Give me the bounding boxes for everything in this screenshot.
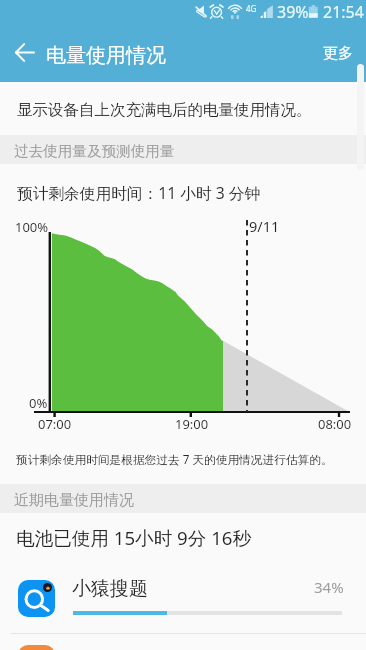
staticText: 19:00 bbox=[175, 415, 209, 433]
staticText: 小猿搜题 bbox=[72, 577, 148, 601]
staticText: 过去使用量及预测使用量 bbox=[14, 142, 175, 160]
button[interactable]: 更多 bbox=[323, 44, 353, 63]
staticText: 08:00 bbox=[318, 415, 352, 433]
staticText: 21:54 bbox=[323, 1, 364, 23]
staticText: 近期电量使用情况 bbox=[14, 491, 134, 510]
staticText: 显示设备自上次充满电后的电量使用情况。 bbox=[17, 100, 312, 120]
button[interactable]: 小猿搜题 bbox=[0, 565, 366, 634]
staticText: 0% bbox=[29, 394, 48, 412]
staticText: 预计剩余使用时间是根据您过去 7 天的使用情况进行估算的。 bbox=[16, 451, 333, 467]
staticText: 100% bbox=[15, 218, 49, 236]
staticText: 电量使用情况 bbox=[46, 43, 166, 68]
staticText: 9/11 bbox=[249, 216, 280, 236]
staticText: 预计剩余使用时间：11 小时 3 分钟 bbox=[17, 182, 261, 203]
staticText: 4G bbox=[246, 3, 257, 14]
staticText: 电池已使用 15小时 9分 16秒 bbox=[16, 525, 252, 550]
staticText: 34% bbox=[314, 577, 344, 597]
staticText: 更多 bbox=[323, 44, 353, 63]
staticText: 07:00 bbox=[38, 415, 72, 433]
staticText: 39% bbox=[277, 1, 309, 23]
button[interactable]: 返回 bbox=[8, 36, 40, 68]
